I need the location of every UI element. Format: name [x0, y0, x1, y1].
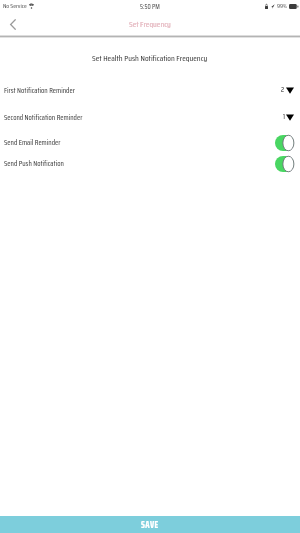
button[interactable]: Send Email Reminder toggle, on	[275, 135, 294, 151]
staticText: 1	[283, 111, 285, 122]
button[interactable]: Second Notification Reminder	[0, 106, 300, 128]
staticText: Send Push Notification	[4, 157, 64, 169]
staticText: Set Health Push Notification Frequency	[92, 51, 208, 64]
button[interactable]: Send Email Reminder	[0, 132, 300, 152]
staticText: 5:50 PM	[140, 1, 160, 12]
staticText: SAVE	[141, 518, 159, 532]
staticText: First Notification Reminder	[4, 84, 75, 96]
staticText: Second Notification Reminder	[4, 111, 83, 123]
staticText: No Service	[3, 1, 27, 11]
button[interactable]: Send Push Notification	[0, 153, 300, 173]
staticText: 2	[281, 84, 285, 95]
button[interactable]: Send Push Notification toggle, on	[275, 156, 294, 172]
staticText: 99%	[277, 1, 287, 11]
staticText: Send Email Reminder	[4, 136, 61, 148]
button[interactable]: Back	[0, 12, 26, 36]
staticText: Set Frequency	[129, 18, 171, 31]
button[interactable]: First Notification Reminder	[0, 79, 300, 101]
button[interactable]: SAVE	[0, 516, 300, 533]
